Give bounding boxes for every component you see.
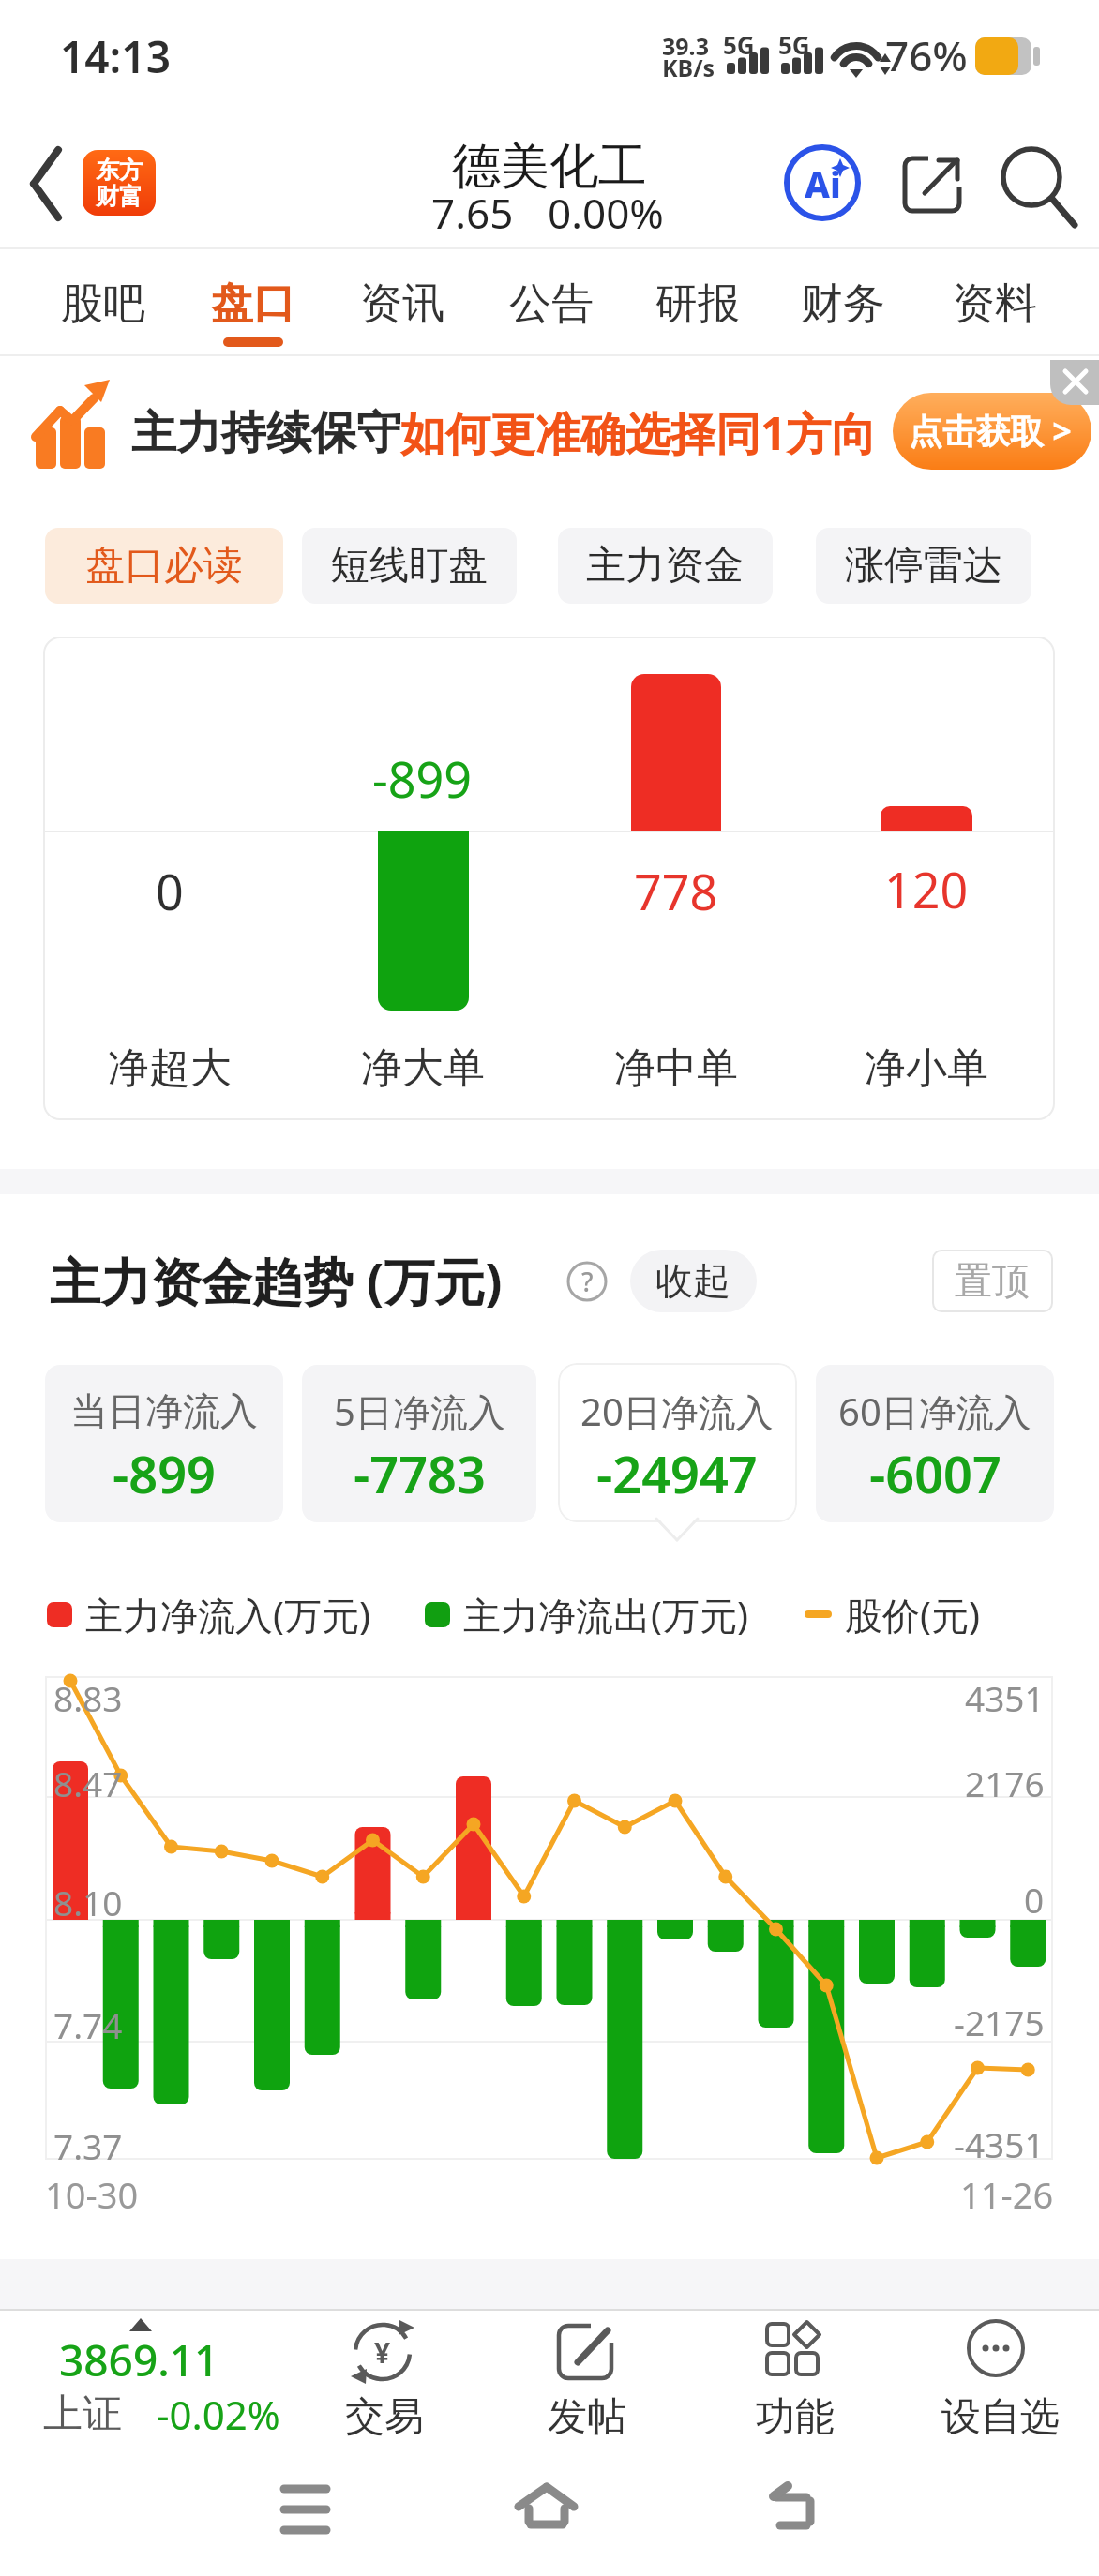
button[interactable]: [0, 360, 881, 491]
staticText: 公告: [509, 277, 594, 331]
staticText: 资料: [953, 277, 1037, 331]
button[interactable]: [816, 528, 1031, 604]
staticText: 2176: [965, 1760, 1045, 1806]
staticText: Ai: [805, 159, 841, 208]
button[interactable]: [45, 528, 283, 604]
button[interactable]: [999, 145, 1083, 230]
staticText: 发帖: [548, 2392, 626, 2442]
staticText: -0.02%: [157, 2388, 280, 2441]
button[interactable]: [19, 141, 84, 230]
staticText: 7.74: [53, 2001, 123, 2048]
button[interactable]: [916, 2312, 1085, 2443]
staticText: 39.3: [662, 30, 709, 62]
staticText: 置顶: [955, 1257, 1030, 1304]
button[interactable]: [558, 1363, 797, 1541]
button[interactable]: [488, 2465, 563, 2550]
staticText: 功能: [756, 2392, 835, 2442]
staticText: 设自选: [941, 2392, 1060, 2442]
staticText: 7.65: [431, 185, 514, 241]
staticText: 11-26: [960, 2170, 1054, 2219]
button[interactable]: [816, 1365, 1054, 1522]
staticText: 0.00%: [548, 185, 664, 241]
button[interactable]: [47, 262, 159, 352]
button[interactable]: [641, 262, 754, 352]
staticText: 净小单: [865, 1042, 988, 1094]
staticText: 净大单: [361, 1042, 485, 1094]
staticText: 8.47: [53, 1760, 123, 1806]
staticText: 0: [156, 858, 184, 924]
staticText: 主力净流入(万元): [85, 1589, 370, 1640]
staticText: 研报: [655, 277, 740, 331]
staticText: KB/s: [662, 52, 715, 83]
staticText: 德美化工: [452, 136, 647, 198]
staticText: 上证: [43, 2389, 122, 2439]
staticText: 778: [634, 858, 718, 924]
staticText: -7783: [354, 1439, 486, 1508]
button[interactable]: [503, 2312, 671, 2443]
staticText: 股价(元): [845, 1589, 980, 1640]
button[interactable]: [711, 2312, 880, 2443]
staticText: 点击获取 >: [909, 408, 1072, 454]
staticText: 4351: [965, 1674, 1045, 1721]
staticText: 8.10: [53, 1879, 123, 1925]
staticText: 交易: [345, 2392, 424, 2442]
button[interactable]: [630, 1250, 757, 1312]
button[interactable]: [197, 262, 309, 352]
staticText: 净中单: [614, 1042, 738, 1094]
staticText: 财富: [96, 182, 143, 211]
staticText: -2175: [954, 1999, 1045, 2045]
button[interactable]: [45, 1365, 283, 1522]
staticText: 8.83: [53, 1674, 123, 1721]
button[interactable]: [495, 262, 608, 352]
button[interactable]: [253, 2465, 328, 2550]
staticText: 收起: [655, 1257, 730, 1304]
button[interactable]: [300, 2312, 469, 2443]
button[interactable]: [38, 2312, 281, 2443]
staticText: -899: [113, 1439, 216, 1508]
button[interactable]: [83, 150, 156, 216]
staticText: 7.37: [53, 2122, 123, 2169]
staticText: 股吧: [61, 277, 145, 331]
button[interactable]: [932, 1250, 1053, 1312]
staticText: 盘口: [211, 277, 295, 331]
staticText: 主力净流出(万元): [463, 1589, 748, 1640]
staticText: 盘口必读: [85, 541, 243, 591]
staticText: 当日净流入: [70, 1387, 258, 1434]
staticText: -6007: [869, 1439, 1001, 1508]
button[interactable]: [346, 262, 459, 352]
staticText: 财务: [801, 277, 885, 331]
staticText: 14:13: [60, 27, 171, 86]
staticText: 涨停雷达: [845, 541, 1002, 591]
button[interactable]: [893, 393, 1091, 470]
staticText: 0: [1024, 1876, 1045, 1923]
button[interactable]: [302, 528, 517, 604]
staticText: 短线盯盘: [330, 541, 488, 591]
staticText: 主力持续保守: [131, 405, 401, 461]
button[interactable]: [1050, 360, 1099, 405]
staticText: ?: [581, 1264, 594, 1299]
button[interactable]: [939, 262, 1051, 352]
staticText: 主力资金: [586, 541, 744, 591]
staticText: 20日净流入: [580, 1385, 774, 1437]
button[interactable]: [900, 150, 966, 216]
staticText: 净超大: [108, 1042, 232, 1094]
staticText: 3869.11: [59, 2330, 219, 2389]
staticText: -24947: [596, 1439, 758, 1508]
staticText: 76%: [885, 27, 968, 83]
staticText: -4351: [954, 2120, 1045, 2167]
staticText: 120: [884, 856, 969, 922]
staticText: 主力资金趋势 (万元): [50, 1246, 503, 1315]
staticText: ¥: [374, 2333, 391, 2372]
staticText: 资讯: [360, 277, 444, 331]
staticText: 如何更准确选择同1方向: [400, 402, 877, 464]
button[interactable]: [558, 528, 773, 604]
button[interactable]: [302, 1365, 536, 1522]
button[interactable]: [785, 146, 860, 221]
button[interactable]: [741, 2465, 816, 2550]
staticText: 10-30: [45, 2170, 139, 2219]
staticText: 东方: [96, 156, 143, 185]
button[interactable]: [787, 262, 899, 352]
staticText: 5G: [723, 28, 755, 61]
staticText: 5G: [778, 28, 810, 61]
button[interactable]: [558, 1363, 797, 1522]
